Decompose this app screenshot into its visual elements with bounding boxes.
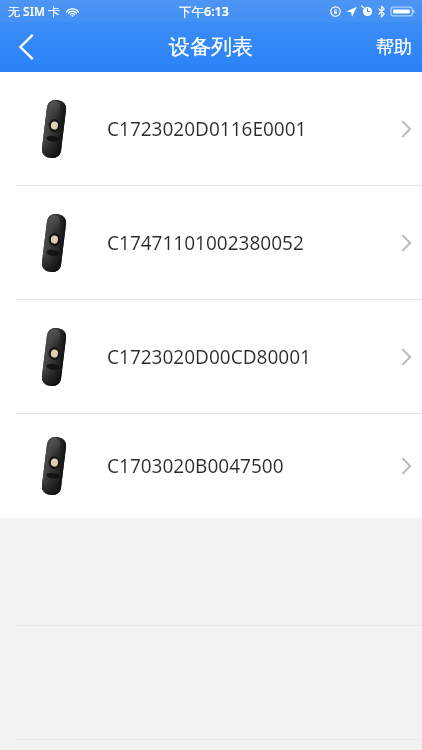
- button[interactable]: 帮助: [366, 22, 422, 72]
- staticText: C17471101002380052: [107, 230, 304, 256]
- staticText: 设备列表: [169, 34, 253, 60]
- button[interactable]: 返回: [0, 22, 52, 72]
- button[interactable]: C1723020D00CD80001: [0, 300, 422, 413]
- staticText: C1723020D0116E0001: [107, 116, 307, 142]
- button[interactable]: C1703020B0047500: [0, 414, 422, 518]
- staticText: 下午6:13: [179, 3, 229, 20]
- staticText: C1703020B0047500: [107, 453, 284, 479]
- button[interactable]: C1723020D0116E0001: [0, 72, 422, 185]
- staticText: 无 SIM 卡: [8, 3, 61, 19]
- staticText: C1723020D00CD80001: [107, 344, 311, 370]
- staticText: 帮助: [376, 36, 412, 59]
- button[interactable]: C17471101002380052: [0, 186, 422, 299]
